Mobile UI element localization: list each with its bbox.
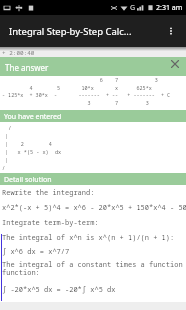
staticText: 3 7 3 (2, 100, 149, 107)
staticText: | (2, 156, 9, 163)
staticText: ∫ x^6 dx = x^7/7 (2, 247, 70, 257)
staticText: Detail solution (4, 175, 52, 185)
staticText: / (2, 124, 12, 131)
staticText: + 2:00:40 (2, 49, 35, 57)
staticText: | x *(5 - x) dx (2, 148, 62, 155)
staticText: The answer (5, 62, 49, 73)
staticText: | 2 4 (2, 140, 52, 147)
staticText: Integrate term-by-term: (2, 218, 99, 228)
staticText: G (130, 3, 136, 13)
staticText: 2:31 am (156, 3, 183, 13)
staticText: / (2, 164, 6, 171)
staticText: Integral Step-by-Step Calc... (9, 25, 132, 38)
staticText: The integral of a constant times a funct… (2, 260, 183, 270)
staticText: | (2, 132, 9, 139)
button[interactable] (0, 173, 186, 185)
staticText: - 125*x + 30*x - ------- + -- + ------- … (2, 92, 171, 99)
staticText: x^2*(-x + 5)^4 = x^6 - 20*x^5 + 150*x^4 … (2, 203, 186, 213)
staticText: 4 5 10*x x 625*x (2, 85, 152, 92)
staticText: 6 7 3 (2, 77, 158, 84)
staticText: Rewrite the integrand: (2, 188, 95, 198)
button[interactable] (0, 110, 186, 122)
button[interactable]: Close (170, 59, 180, 69)
button[interactable] (0, 57, 186, 76)
staticText: function: (2, 268, 40, 278)
staticText: ∫ -20*x^5 dx = -20*∫ x^5 dx (2, 285, 116, 295)
staticText: The integral of x^n is x^(n + 1)/(n + 1)… (2, 233, 175, 243)
button[interactable]: More options (164, 24, 178, 38)
staticText: You have entered (4, 112, 62, 122)
